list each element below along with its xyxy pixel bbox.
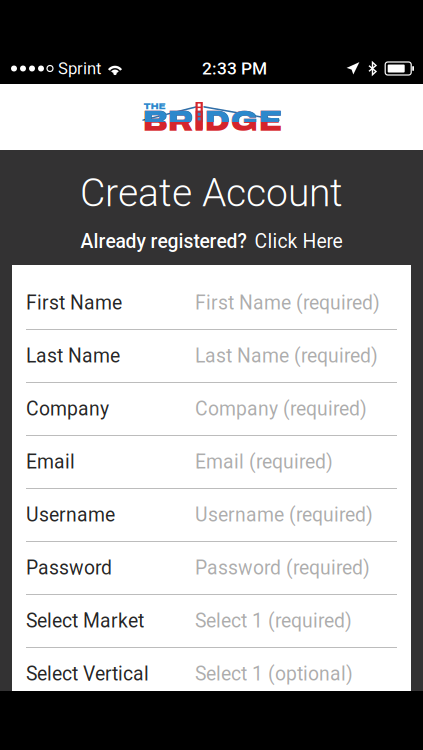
staticText: Select 1 (optional): [195, 663, 353, 685]
staticText: Email: [26, 451, 75, 473]
staticText: First Name (required): [195, 292, 380, 314]
button[interactable]: Click Here: [254, 230, 342, 253]
button[interactable]: Select Market: [12, 595, 411, 648]
staticText: Select Market: [26, 610, 144, 632]
staticText: BRIDGE: [142, 105, 282, 137]
button[interactable]: First Name: [12, 277, 411, 330]
button[interactable]: Last Name: [12, 330, 411, 383]
staticText: Last Name: [26, 345, 120, 367]
staticText: Company: [26, 398, 109, 420]
staticText: Password: [26, 557, 112, 579]
staticText: Username (required): [195, 504, 373, 526]
staticText: Select 1 (required): [195, 610, 352, 632]
button[interactable]: Email: [12, 436, 411, 489]
button[interactable]: Password: [12, 542, 411, 595]
staticText: BRIDGE: [142, 105, 282, 137]
staticText: Already registered?: [80, 230, 246, 253]
button[interactable]: Company: [12, 383, 411, 436]
staticText: Last Name (required): [195, 345, 378, 367]
staticText: Password (required): [195, 557, 370, 579]
staticText: Create Account: [80, 170, 343, 216]
staticText: THE: [143, 101, 165, 111]
staticText: Username: [26, 504, 115, 526]
button[interactable]: Username: [12, 489, 411, 542]
staticText: 2:33 PM: [202, 58, 267, 79]
button[interactable]: Select Vertical: [12, 648, 411, 701]
staticText: Click Here: [254, 230, 342, 253]
staticText: Sprint: [58, 59, 101, 78]
staticText: First Name: [26, 292, 122, 314]
staticText: Email (required): [195, 451, 333, 473]
staticText: Company (required): [195, 398, 367, 420]
staticText: Select Vertical: [26, 663, 149, 685]
